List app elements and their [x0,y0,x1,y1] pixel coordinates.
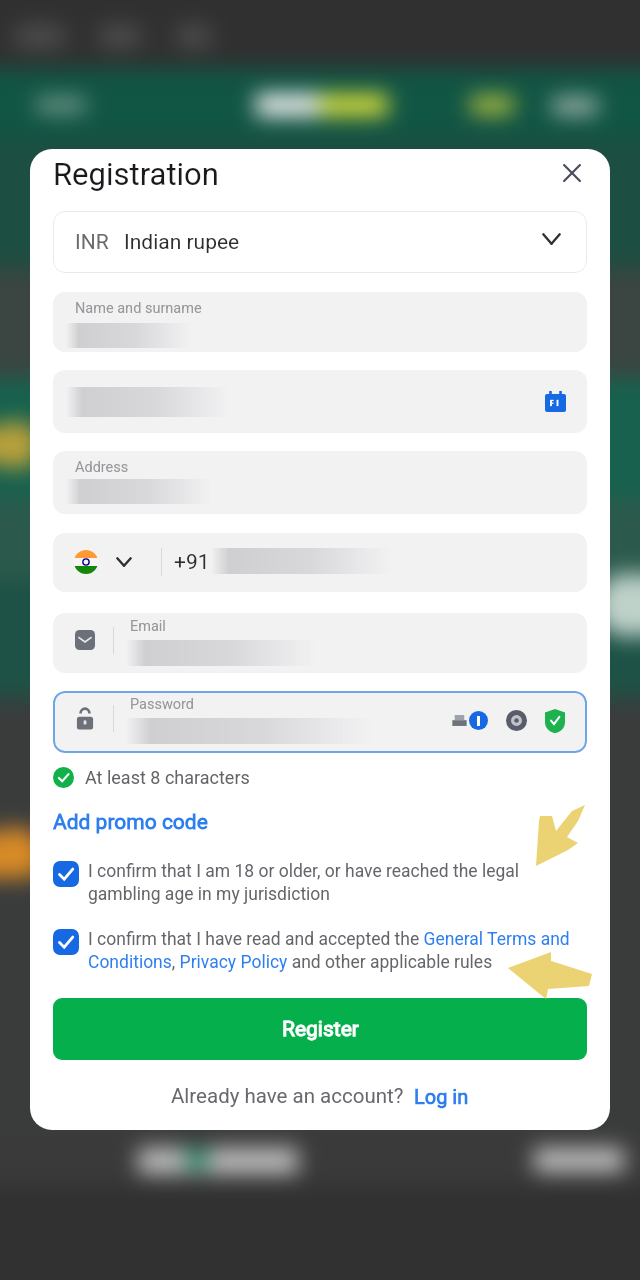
button[interactable]: I confirm that I am 18 or older, or have… [53,861,593,904]
button[interactable]: Close [550,151,594,195]
staticText: Password [130,696,195,713]
button[interactable]: Add promo code [53,810,208,835]
staticText: Register [282,1017,359,1042]
button[interactable]: Address [53,451,587,514]
button[interactable]: Register [53,998,587,1060]
button[interactable]: Pick date [545,391,566,412]
button[interactable]: INR [53,211,587,273]
button[interactable]: +91 [53,533,587,592]
staticText: Name and surname [75,300,202,317]
staticText: I confirm that I am 18 or older, or have… [88,861,593,904]
button[interactable]: Name and surname [53,292,587,352]
staticText: Already have an account? [171,1084,404,1108]
staticText: I confirm that I have read and accepted … [88,929,593,972]
staticText: +91 [174,550,210,575]
button[interactable]: Show password [506,710,527,731]
staticText: Address [75,459,129,476]
button[interactable]: Password [53,691,587,753]
staticText: Add promo code [53,810,208,835]
button[interactable]: Pick date [53,370,587,433]
staticText: INR [75,230,109,255]
staticText: Log in [414,1085,469,1108]
button[interactable]: I confirm that I have read and accepted … [53,929,593,972]
staticText: At least 8 characters [85,767,250,788]
button[interactable]: Email [53,613,587,673]
staticText: Email [130,618,166,635]
button[interactable]: Log in [414,1085,469,1108]
staticText: Registration [53,156,219,192]
staticText: Indian rupee [124,230,240,255]
